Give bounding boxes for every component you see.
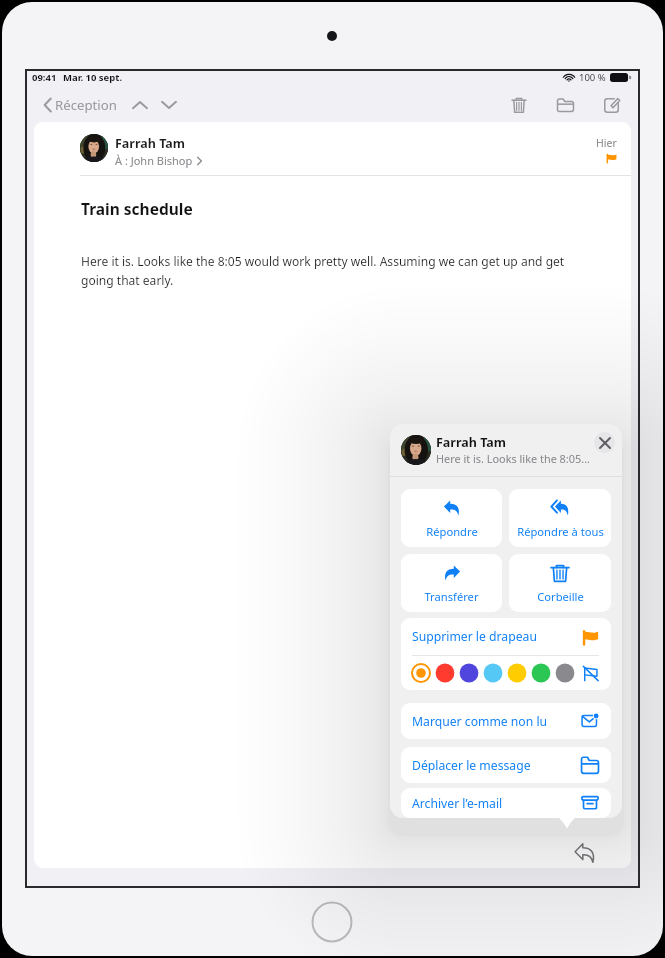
button[interactable]: Archiver l’e-mail <box>401 788 611 818</box>
button[interactable]: Marquer comme non lu <box>401 703 611 739</box>
staticText: Déplacer le message <box>412 757 581 774</box>
staticText: Supprimer le drapeau <box>412 628 582 645</box>
staticText: Here it is. Looks like the 8:05... <box>436 451 590 466</box>
button[interactable]: Delete <box>505 91 533 119</box>
button[interactable]: Flag colour <box>530 662 552 684</box>
staticText: Train schedule <box>81 198 193 219</box>
button[interactable]: Close <box>594 432 615 453</box>
staticText: Farrah Tam <box>115 135 186 152</box>
staticText: Répondre <box>426 524 478 539</box>
button[interactable]: Flag colour <box>482 662 504 684</box>
button[interactable]: Flag colour <box>410 662 432 684</box>
button[interactable]: Compose <box>597 91 625 119</box>
button[interactable]: Supprimer le drapeau <box>401 618 611 655</box>
button[interactable]: Reply <box>568 836 602 870</box>
staticText: Transférer <box>424 589 479 604</box>
staticText: Corbeille <box>537 589 584 604</box>
button[interactable]: Réception <box>42 92 119 118</box>
staticText: Répondre à tous <box>517 524 604 539</box>
staticText: 09:41 <box>32 71 57 83</box>
staticText: Hier <box>596 136 617 150</box>
button[interactable]: Flag colour <box>458 662 480 684</box>
button[interactable]: Flag colour <box>554 662 576 684</box>
staticText: Here it is. Looks like the 8:05 would wo… <box>81 253 581 289</box>
staticText: Mar. 10 sept. <box>63 71 123 83</box>
button[interactable]: Flag colour <box>506 662 528 684</box>
staticText: Réception <box>55 96 117 114</box>
staticText: À : John Bishop <box>115 153 193 168</box>
staticText: Farrah Tam <box>436 434 507 451</box>
button[interactable]: Flag colour <box>434 662 456 684</box>
staticText: Marquer comme non lu <box>412 713 581 730</box>
button[interactable]: Next message <box>158 94 180 116</box>
button[interactable]: Répondre à tous <box>509 489 611 547</box>
button[interactable]: Previous message <box>129 94 151 116</box>
staticText: 100 % <box>579 71 606 83</box>
button[interactable]: Transférer <box>401 554 502 612</box>
button[interactable]: Corbeille <box>509 554 611 612</box>
button[interactable]: Déplacer le message <box>401 747 611 783</box>
button[interactable]: Move to folder <box>551 91 579 119</box>
staticText: Archiver l’e-mail <box>412 795 581 812</box>
button[interactable]: Répondre <box>401 489 502 547</box>
button[interactable]: Remove flag <box>581 664 600 683</box>
